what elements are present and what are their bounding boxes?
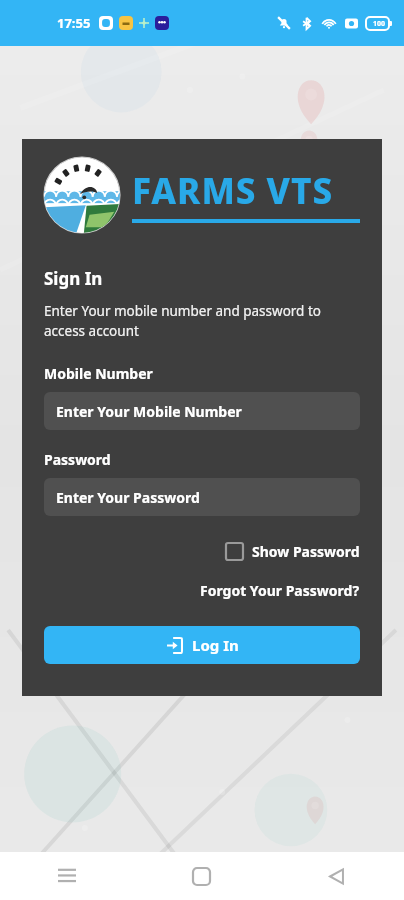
staticText: Enter Your Mobile Number [56, 402, 242, 421]
button[interactable]: Forgot Your Password? [200, 579, 360, 602]
staticText: 100 [373, 19, 386, 29]
button[interactable]: Home [134, 852, 269, 900]
staticText: FARMS VTS [132, 167, 334, 215]
staticText: Sign In [44, 267, 103, 290]
button[interactable]: Log In [44, 626, 360, 664]
staticText: Forgot Your Password? [200, 581, 360, 600]
staticText: Mobile Number [44, 364, 153, 383]
staticText: Enter Your mobile number and password to… [44, 302, 360, 340]
button[interactable]: Show Password [226, 540, 360, 563]
staticText: Password [44, 450, 111, 469]
button[interactable]: Back [269, 852, 404, 900]
staticText: Enter Your Password [56, 488, 200, 507]
staticText: Show Password [252, 542, 360, 561]
button[interactable]: Enter Your Mobile Number [44, 392, 360, 430]
staticText: 17:55 [57, 14, 91, 32]
button[interactable]: Enter Your Password [44, 478, 360, 516]
button[interactable]: Recent apps [0, 852, 134, 900]
staticText: Log In [192, 635, 239, 655]
